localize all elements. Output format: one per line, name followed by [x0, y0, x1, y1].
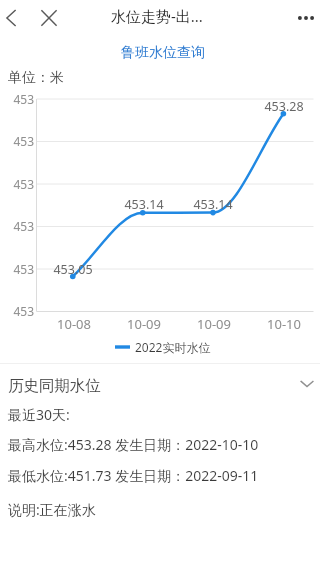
staticText: 453.14 — [183, 196, 243, 213]
staticText: 2022实时水位 — [135, 339, 211, 355]
staticText: 最近30天: — [8, 405, 70, 424]
button[interactable]: More options — [288, 0, 320, 35]
button[interactable]: 历史同期水位 — [0, 368, 320, 400]
staticText: 453 — [0, 218, 34, 234]
staticText: 453.14 — [114, 196, 174, 213]
staticText: 453 — [0, 91, 34, 107]
staticText: 453 — [0, 261, 34, 277]
button[interactable]: 鲁班水位查询 — [121, 44, 205, 62]
staticText: 10-09 — [119, 315, 169, 333]
staticText: 10-09 — [189, 315, 239, 333]
staticText: 453 — [0, 176, 34, 192]
staticText: 10-10 — [259, 315, 309, 333]
staticText: 历史同期水位 — [8, 376, 101, 396]
staticText: 453 — [0, 303, 34, 319]
staticText: 最低水位:451.73 发生日期：2022-09-11 — [8, 466, 259, 485]
button[interactable]: Back — [0, 0, 28, 35]
staticText: 453.28 — [254, 98, 314, 115]
button[interactable]: Close — [33, 0, 65, 35]
staticText: 453.05 — [43, 261, 103, 278]
staticText: 单位：米 — [8, 69, 64, 87]
staticText: 最高水位:453.28 发生日期：2022-10-10 — [8, 435, 259, 454]
staticText: 水位走势-出... — [111, 6, 203, 26]
staticText: 说明:正在涨水 — [8, 500, 96, 519]
staticText: 10-08 — [49, 315, 99, 333]
staticText: 453 — [0, 133, 34, 149]
